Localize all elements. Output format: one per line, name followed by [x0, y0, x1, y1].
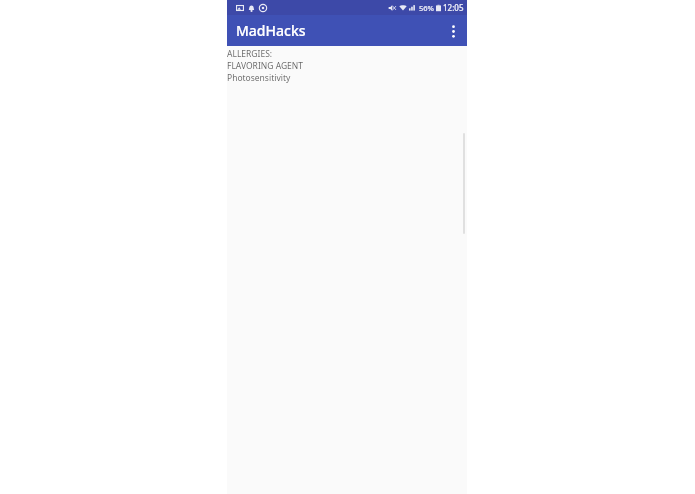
staticText: ALLERGIES:	[227, 48, 273, 60]
button[interactable]: More options	[441, 19, 465, 43]
staticText: 56%	[419, 3, 434, 13]
staticText: Photosensitivity	[227, 72, 291, 84]
staticText: MadHacks	[236, 21, 306, 40]
staticText: FLAVORING AGENT	[227, 60, 303, 72]
staticText: 12:05	[443, 2, 464, 13]
